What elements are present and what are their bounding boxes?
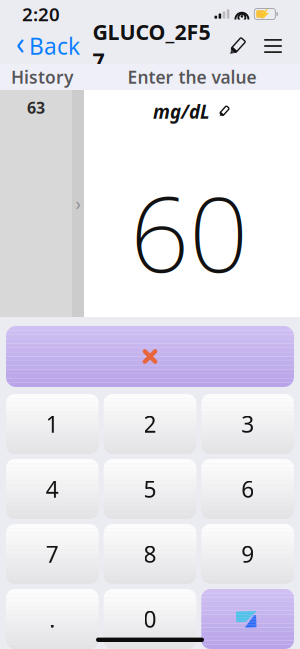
- button[interactable]: 5: [104, 459, 196, 519]
- button[interactable]: Back: [8, 25, 80, 67]
- button[interactable]: 2: [104, 394, 196, 454]
- staticText: 6: [241, 474, 254, 504]
- staticText: 3: [241, 409, 254, 439]
- staticText: GLUCO_2F57: [92, 18, 210, 74]
- button[interactable]: Expand history: [72, 90, 84, 317]
- staticText: 7: [46, 539, 59, 569]
- staticText: mg/dL: [153, 99, 210, 124]
- staticText: ⚡: [259, 9, 271, 19]
- button[interactable]: Menu: [262, 31, 292, 61]
- staticText: 4: [46, 474, 59, 504]
- staticText: 2:20: [22, 2, 60, 26]
- staticText: 1: [46, 409, 59, 439]
- button[interactable]: 9: [201, 524, 294, 584]
- button[interactable]: 7: [6, 524, 99, 584]
- staticText: Back: [29, 31, 80, 61]
- staticText: 2: [143, 409, 156, 439]
- button[interactable]: 1: [6, 394, 99, 454]
- staticText: 9: [241, 539, 254, 569]
- button[interactable]: 6: [201, 459, 294, 519]
- button[interactable]: 8: [104, 524, 196, 584]
- staticText: .: [49, 604, 55, 634]
- button[interactable]: Clear value: [6, 326, 294, 387]
- button[interactable]: Change unit: [153, 90, 231, 124]
- button[interactable]: 0: [104, 589, 196, 649]
- button[interactable]: Rename: [223, 29, 252, 62]
- button[interactable]: Send value: [201, 589, 294, 649]
- button[interactable]: 3: [201, 394, 294, 454]
- staticText: 63: [27, 97, 45, 118]
- button[interactable]: 4: [6, 459, 99, 519]
- button[interactable]: 63: [0, 90, 72, 125]
- staticText: History: [11, 65, 73, 88]
- staticText: 0: [143, 604, 156, 634]
- button[interactable]: .: [6, 589, 99, 649]
- staticText: 5: [143, 474, 156, 504]
- staticText: 60: [130, 163, 248, 301]
- staticText: ›: [75, 192, 80, 215]
- staticText: 8: [143, 539, 156, 569]
- staticText: Enter the value: [127, 65, 256, 88]
